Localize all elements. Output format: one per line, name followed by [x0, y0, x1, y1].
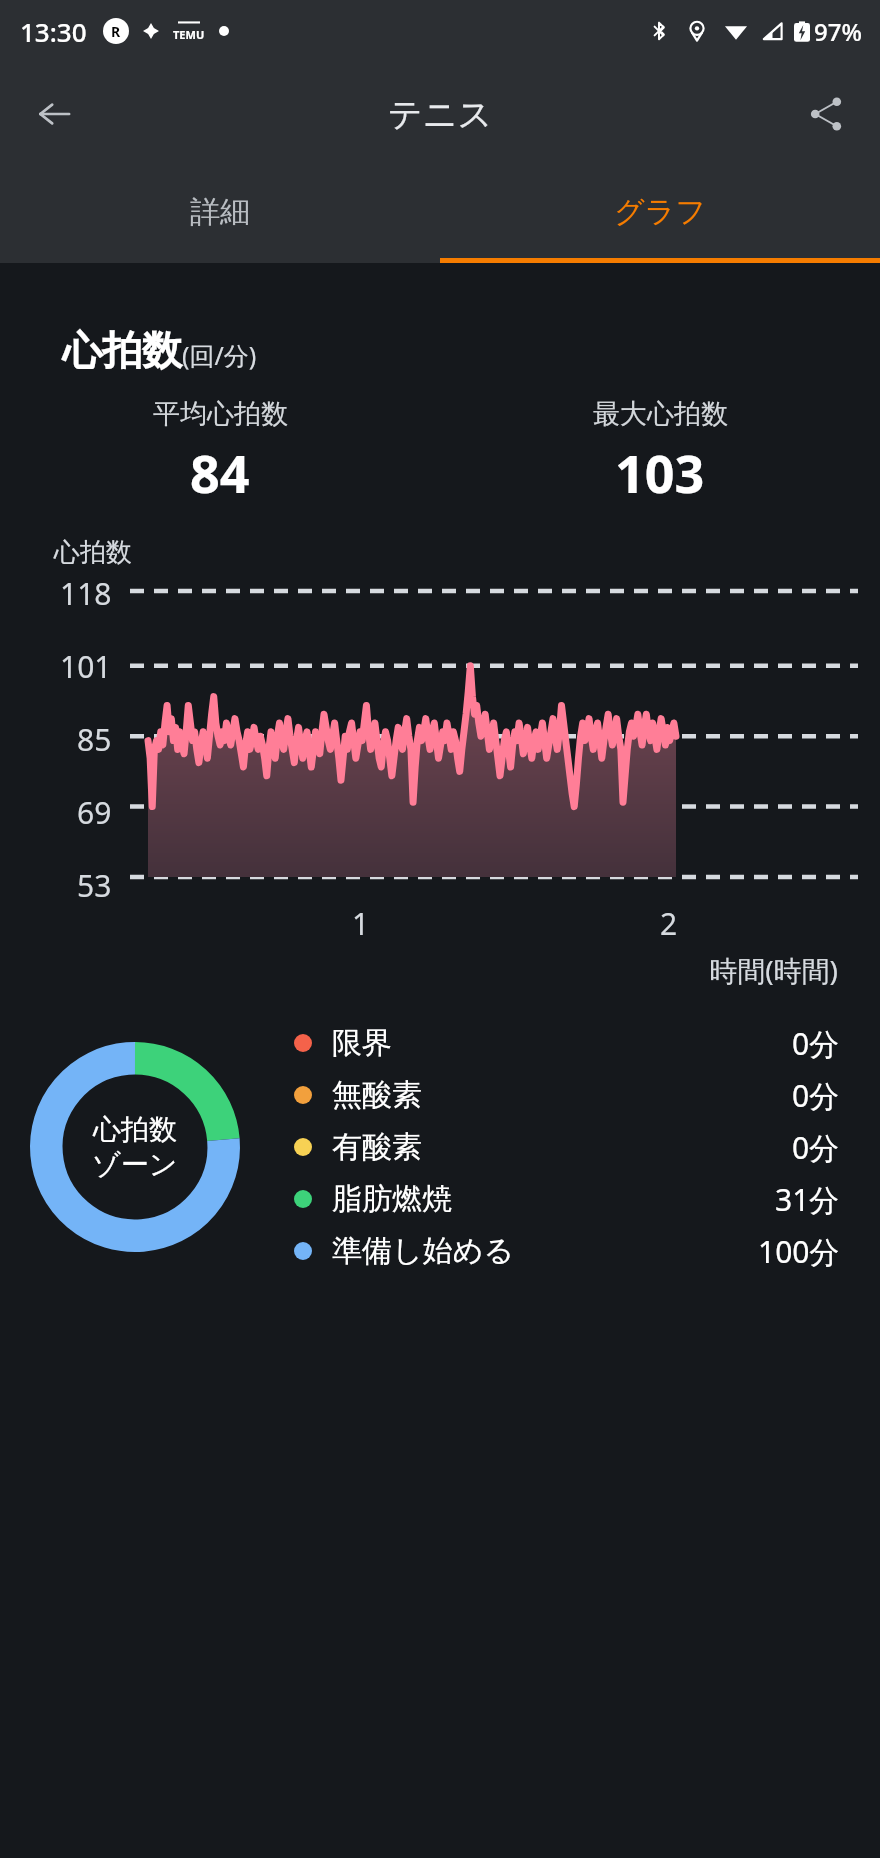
button[interactable]: 詳細: [0, 166, 440, 258]
staticText: 31分: [775, 1179, 840, 1220]
staticText: 時間(時間): [0, 951, 838, 989]
staticText: 最大心拍数: [593, 397, 728, 431]
staticText: 53: [77, 865, 112, 903]
button[interactable]: グラフ: [440, 166, 880, 258]
staticText: 2: [660, 903, 678, 944]
staticText: グラフ: [614, 193, 707, 231]
staticText: 心拍数: [62, 325, 182, 375]
staticText: 詳細: [190, 193, 250, 231]
staticText: 有酸素: [332, 1128, 422, 1166]
staticText: 103: [615, 437, 705, 508]
staticText: 無酸素: [332, 1076, 422, 1114]
staticText: 97%: [814, 15, 862, 48]
staticText: 118: [60, 573, 112, 611]
staticText: 心拍数: [93, 1112, 177, 1147]
staticText: 0分: [792, 1023, 840, 1064]
button[interactable]: 無酸素: [294, 1069, 840, 1121]
staticText: 101: [60, 646, 112, 684]
staticText: 84: [190, 437, 250, 508]
staticText: (回/分): [182, 338, 257, 372]
staticText: テニス: [388, 93, 493, 136]
staticText: 脂肪燃焼: [332, 1180, 452, 1218]
staticText: 13:30: [20, 14, 87, 49]
staticText: 69: [77, 792, 112, 830]
staticText: ゾーン: [92, 1147, 178, 1182]
button[interactable]: Share: [794, 82, 858, 146]
staticText: 限界: [332, 1024, 392, 1062]
staticText: 0分: [792, 1127, 840, 1168]
staticText: 0分: [792, 1075, 840, 1116]
staticText: 100分: [758, 1231, 840, 1272]
staticText: 心拍数: [54, 536, 132, 569]
staticText: TEMU: [173, 27, 205, 42]
button[interactable]: 有酸素: [294, 1121, 840, 1173]
staticText: R: [111, 22, 121, 41]
button[interactable]: 脂肪燃焼: [294, 1173, 840, 1225]
staticText: 1: [352, 903, 370, 944]
staticText: 準備し始める: [332, 1232, 515, 1270]
staticText: 平均心拍数: [153, 397, 288, 431]
staticText: 85: [77, 719, 112, 757]
button[interactable]: 限界: [294, 1017, 840, 1069]
button[interactable]: Back: [22, 82, 86, 146]
button[interactable]: 準備し始める: [294, 1225, 840, 1277]
